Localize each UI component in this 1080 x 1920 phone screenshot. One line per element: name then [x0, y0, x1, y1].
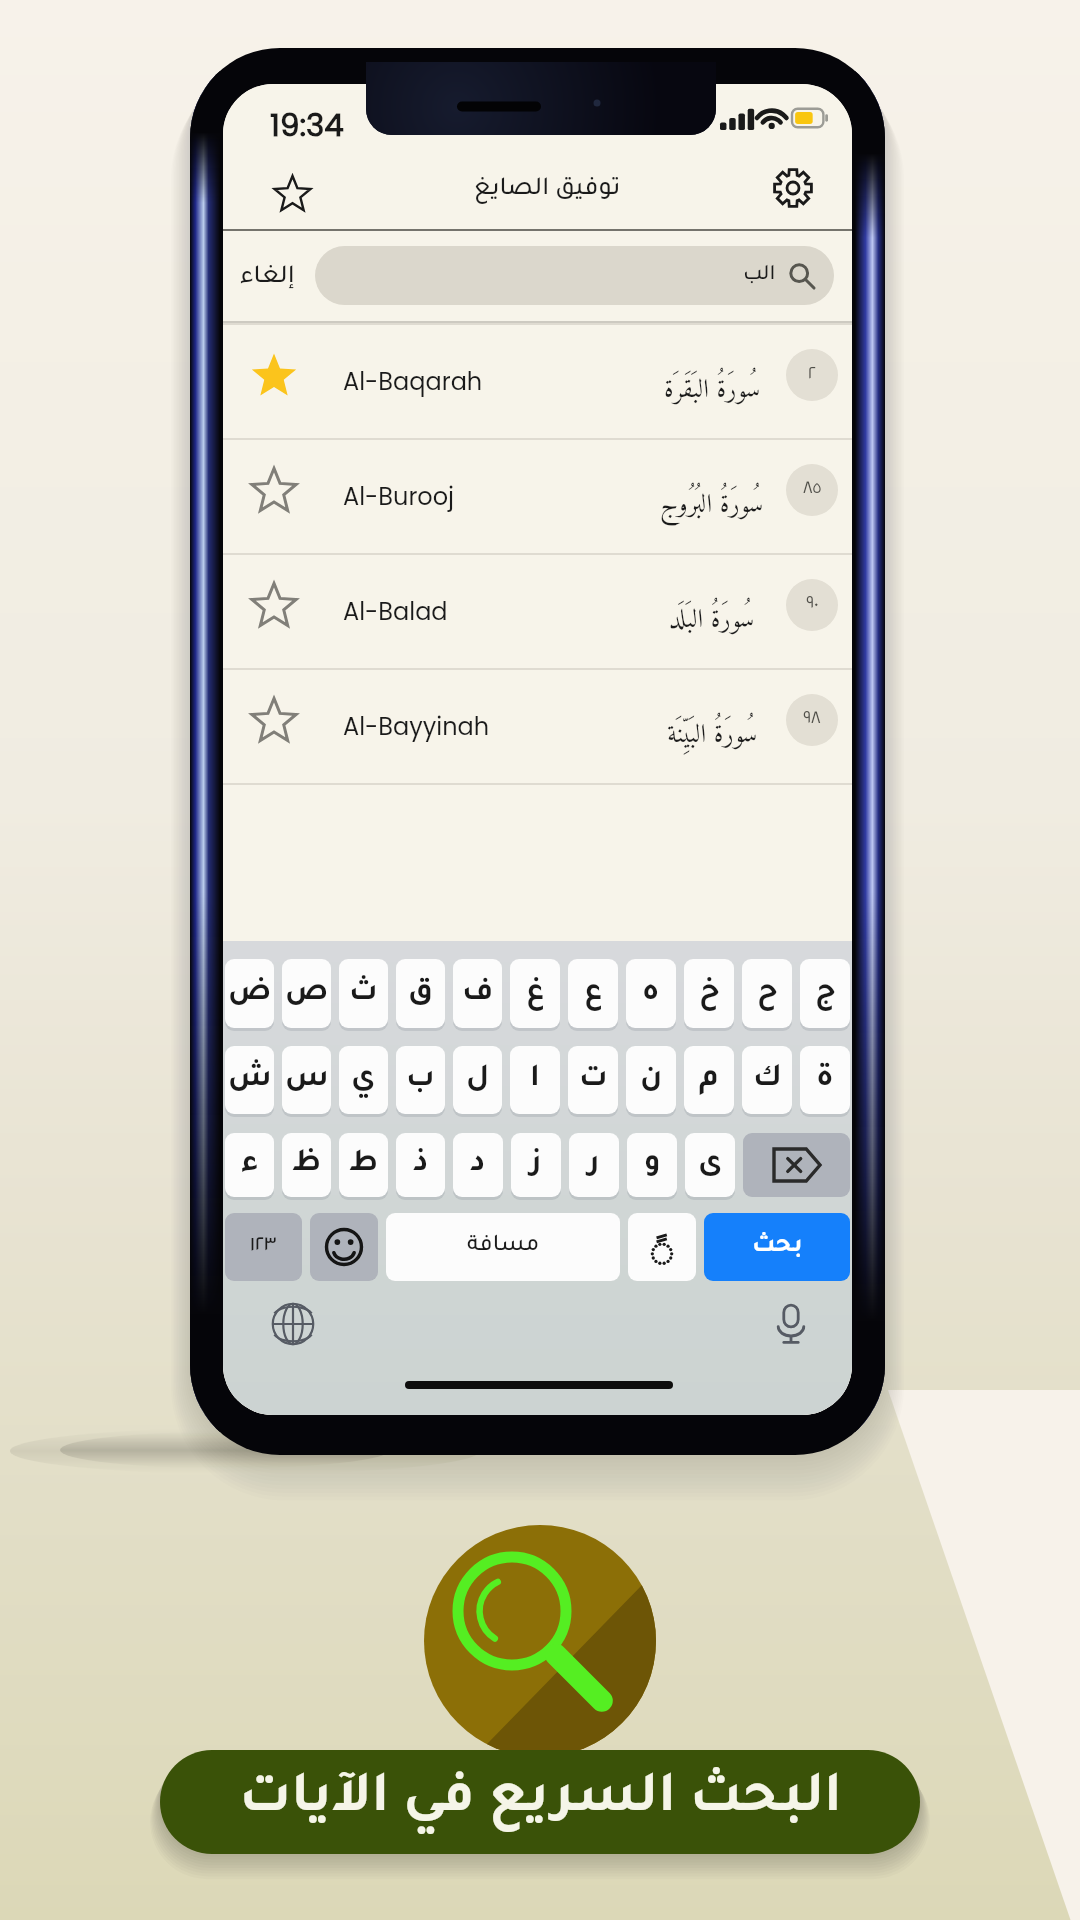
staticText: ٩٠: [806, 595, 819, 615]
button[interactable]: ي: [339, 1046, 388, 1114]
staticText: ش: [228, 1064, 272, 1096]
staticText: ن: [640, 1064, 663, 1096]
button[interactable]: ذ: [396, 1133, 445, 1197]
button[interactable]: Add Al-Bayyinah to favourites: [250, 696, 298, 744]
button[interactable]: ك: [742, 1046, 792, 1114]
staticText: غ: [526, 978, 545, 1010]
button[interactable]: خ: [684, 959, 734, 1028]
button[interactable]: Add Al-Burooj to favourites: [250, 466, 298, 514]
staticText: مسافة: [467, 1235, 540, 1259]
button[interactable]: Settings: [773, 168, 813, 208]
button[interactable]: Add Al-Balad to favourites: [250, 581, 298, 629]
button[interactable]: ظ: [282, 1133, 331, 1197]
staticText: ي: [351, 1064, 376, 1096]
staticText: سُورَةُ البُرُوج: [660, 465, 764, 529]
button[interactable]: ث: [339, 959, 388, 1028]
staticText: سُورَةُ البَقَرَة: [664, 350, 761, 414]
staticText: Al-Balad: [343, 595, 448, 629]
staticText: ل: [466, 1064, 490, 1096]
button[interactable]: Remove Al-Baqarah from favourites: [223, 325, 852, 438]
button[interactable]: ا: [510, 1046, 560, 1114]
staticText: بحث: [752, 1234, 803, 1260]
button[interactable]: ء: [225, 1133, 274, 1197]
button[interactable]: ج: [800, 959, 850, 1028]
staticText: ا: [530, 1064, 540, 1096]
staticText: ذ: [413, 1149, 429, 1181]
button[interactable]: Backspace: [743, 1133, 850, 1197]
button[interactable]: إلغاء: [240, 265, 295, 291]
staticText: ك: [753, 1064, 782, 1096]
staticText: ف: [462, 978, 494, 1010]
staticText: Al-Bayyinah: [343, 710, 490, 744]
staticText: ج: [815, 978, 836, 1010]
staticText: ر: [588, 1149, 600, 1181]
staticText: ث: [349, 978, 378, 1010]
staticText: ت: [579, 1064, 608, 1096]
staticText: الب: [743, 265, 776, 287]
button[interactable]: ن: [626, 1046, 676, 1114]
button[interactable]: ف: [453, 959, 502, 1028]
button[interactable]: ش: [225, 1046, 274, 1114]
staticText: Al-Baqarah: [343, 365, 483, 399]
button[interactable]: م: [684, 1046, 734, 1114]
button[interactable]: و: [627, 1133, 677, 1197]
staticText: ض: [228, 978, 272, 1010]
staticText: د: [470, 1149, 486, 1181]
staticText: ١٢٣: [250, 1236, 277, 1258]
button[interactable]: Add Al-Burooj to favourites: [223, 440, 852, 553]
button[interactable]: Voice input: [763, 1296, 819, 1352]
button[interactable]: Add Al-Bayyinah to favourites: [223, 670, 852, 783]
button[interactable]: بحث: [704, 1213, 850, 1281]
staticText: ب: [406, 1064, 435, 1096]
staticText: ى: [698, 1149, 723, 1181]
button[interactable]: ١٢٣: [225, 1213, 302, 1281]
button[interactable]: ل: [453, 1046, 502, 1114]
staticText: س: [285, 1064, 329, 1096]
button[interactable]: Add Al-Balad to favourites: [223, 555, 852, 668]
staticText: ٩٨: [803, 710, 821, 730]
button[interactable]: ط: [339, 1133, 388, 1197]
button[interactable]: ص: [282, 959, 331, 1028]
button[interactable]: س: [282, 1046, 331, 1114]
staticText: 19:34: [270, 103, 344, 146]
staticText: ح: [757, 978, 778, 1010]
button[interactable]: ق: [396, 959, 445, 1028]
button[interactable]: البحث السريع في الآيات: [160, 1750, 920, 1854]
staticText: خ: [699, 978, 720, 1010]
staticText: ظ: [292, 1149, 321, 1181]
staticText: م: [699, 1064, 719, 1096]
button[interactable]: د: [453, 1133, 503, 1197]
staticText: ه: [642, 978, 660, 1010]
staticText: ع: [584, 978, 603, 1010]
button[interactable]: ز: [511, 1133, 561, 1197]
staticText: و: [644, 1149, 661, 1181]
staticText: ة: [816, 1064, 834, 1096]
staticText: ز: [530, 1149, 542, 1181]
staticText: ٨٥: [803, 480, 822, 500]
button[interactable]: Emoji: [310, 1213, 378, 1281]
button[interactable]: Favourites: [273, 174, 312, 213]
button[interactable]: الب: [315, 246, 834, 305]
staticText: توفيق الصايغ: [474, 177, 621, 203]
button[interactable]: ة: [800, 1046, 850, 1114]
button[interactable]: ر: [569, 1133, 619, 1197]
staticText: ء: [241, 1149, 259, 1181]
button[interactable]: ب: [396, 1046, 445, 1114]
staticText: ق: [408, 978, 433, 1010]
button[interactable]: غ: [510, 959, 560, 1028]
staticText: Al-Burooj: [343, 480, 454, 514]
button[interactable]: Remove Al-Baqarah from favourites: [250, 351, 298, 399]
button[interactable]: ه: [626, 959, 676, 1028]
button[interactable]: Diacritic: [628, 1213, 696, 1281]
button[interactable]: Change language: [265, 1296, 321, 1352]
button[interactable]: ض: [225, 959, 274, 1028]
staticText: البحث السريع في الآيات: [239, 1773, 842, 1831]
button[interactable]: ح: [742, 959, 792, 1028]
button[interactable]: ع: [568, 959, 618, 1028]
staticText: سُورَةُ البَلَد: [669, 580, 755, 644]
button[interactable]: مسافة: [386, 1213, 620, 1281]
staticText: ٢: [808, 365, 816, 385]
button[interactable]: ى: [685, 1133, 735, 1197]
staticText: ط: [349, 1149, 378, 1181]
button[interactable]: ت: [568, 1046, 618, 1114]
